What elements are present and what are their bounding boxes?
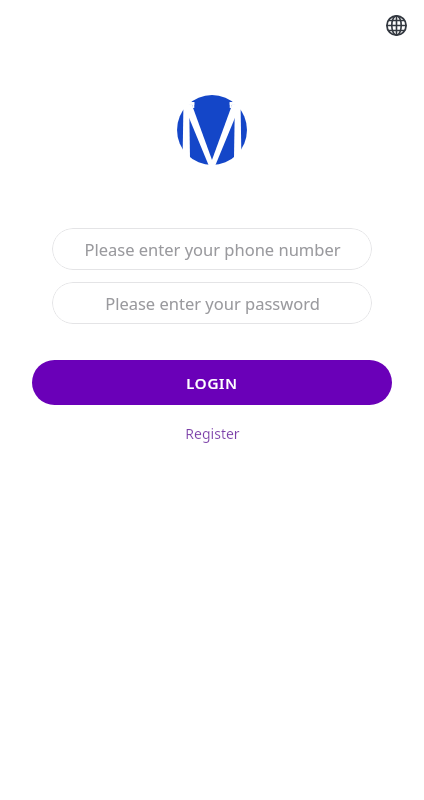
staticText: Register [185, 424, 240, 443]
button[interactable]: Register [175, 420, 250, 447]
button[interactable]: Please enter your phone number [52, 228, 372, 270]
staticText: Please enter your phone number [84, 238, 341, 260]
staticText: Please enter your password [105, 292, 320, 314]
staticText: LOGIN [186, 373, 238, 393]
button[interactable]: Change language [382, 11, 410, 39]
button[interactable]: Please enter your password [52, 282, 372, 324]
button[interactable]: LOGIN [32, 360, 392, 405]
